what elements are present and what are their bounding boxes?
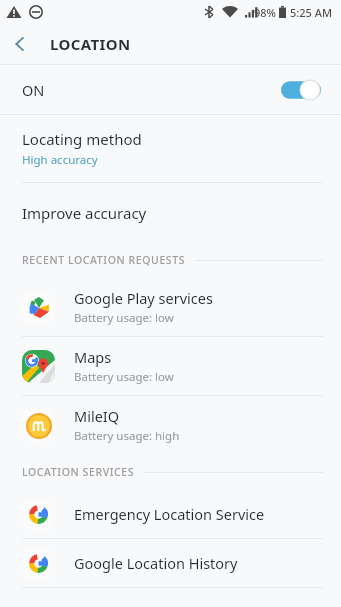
staticText: LOCATION SERVICES: [22, 465, 135, 479]
staticText: Maps: [74, 347, 112, 367]
button[interactable]: Google Play services: [0, 278, 341, 336]
staticText: RECENT LOCATION REQUESTS: [22, 253, 186, 267]
staticText: ON: [22, 80, 45, 100]
staticText: MileIQ: [74, 406, 120, 426]
button[interactable]: Improve accuracy: [0, 183, 341, 242]
staticText: 5:25 AM: [290, 5, 333, 20]
staticText: Battery usage: low: [74, 369, 174, 385]
button[interactable]: Maps: [0, 337, 341, 395]
button[interactable]: Google Location History: [0, 539, 341, 587]
button[interactable]: ON: [0, 65, 341, 114]
staticText: LOCATION: [50, 34, 131, 54]
staticText: Google Play services: [74, 288, 213, 308]
staticText: Locating method: [22, 129, 142, 149]
button[interactable]: Emergency Location Service: [0, 490, 341, 538]
staticText: Battery usage: low: [74, 310, 174, 326]
staticText: High accuracy: [22, 152, 98, 168]
staticText: Battery usage: high: [74, 428, 180, 444]
staticText: Improve accuracy: [22, 203, 147, 223]
staticText: 98%: [254, 5, 276, 20]
button[interactable]: Locating method: [0, 115, 341, 182]
staticText: Emergency Location Service: [74, 504, 265, 524]
button[interactable]: MileIQ: [0, 396, 341, 454]
button[interactable]: Back: [0, 24, 40, 64]
staticText: Google Location History: [74, 553, 238, 573]
